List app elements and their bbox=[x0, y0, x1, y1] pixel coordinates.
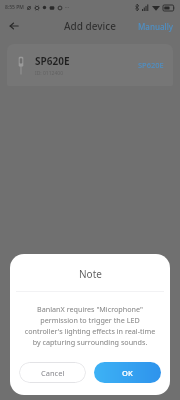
staticText: Note bbox=[79, 267, 102, 281]
button[interactable]: SP620E bbox=[7, 44, 173, 86]
button[interactable]: OK bbox=[94, 362, 161, 383]
button[interactable]: Manually bbox=[136, 19, 176, 34]
staticText: Cancel bbox=[41, 368, 65, 378]
staticText: SP620E bbox=[35, 54, 70, 68]
staticText: 8:55 PM bbox=[5, 4, 24, 11]
button[interactable]: Cancel bbox=[19, 362, 86, 383]
staticText: OK bbox=[122, 368, 133, 378]
staticText: ··· bbox=[65, 4, 70, 11]
button[interactable]: Back bbox=[4, 16, 24, 36]
staticText: Manually bbox=[138, 21, 174, 32]
staticText: SP620E bbox=[138, 60, 164, 70]
staticText: BanlanX requires "Microphone" permission… bbox=[21, 304, 159, 347]
staticText: ID: 0112400 bbox=[35, 70, 64, 77]
staticText: Add device bbox=[64, 19, 116, 33]
